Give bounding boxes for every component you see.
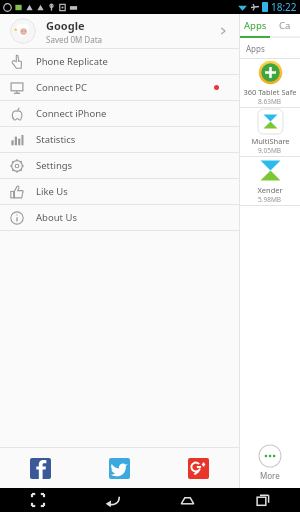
button[interactable]: About Us xyxy=(0,205,239,230)
staticText: 8.63MB xyxy=(258,97,282,106)
button[interactable]: Back xyxy=(75,488,150,512)
staticText: Statistics xyxy=(36,133,76,146)
staticText: Xender xyxy=(257,185,283,195)
button[interactable]: Social link xyxy=(109,458,130,479)
staticText: More xyxy=(260,470,280,481)
button[interactable]: Phone Replicate xyxy=(0,49,239,74)
staticText: Settings xyxy=(36,159,73,172)
button[interactable]: Home xyxy=(150,488,225,512)
staticText: Apps xyxy=(244,19,267,32)
staticText: 360 Tablet Safe xyxy=(243,87,297,97)
staticText: About Us xyxy=(36,211,77,224)
button[interactable]: Recents xyxy=(225,488,300,512)
button[interactable]: Google xyxy=(0,14,239,48)
button[interactable]: Like Us xyxy=(0,179,239,204)
button[interactable]: Apps xyxy=(240,14,270,36)
staticText: Like Us xyxy=(36,185,68,198)
staticText: 18:22 xyxy=(271,0,297,14)
button[interactable]: Statistics xyxy=(0,127,239,152)
staticText: Saved 0M Data xyxy=(46,34,103,45)
button[interactable]: Xender xyxy=(240,157,300,205)
button[interactable]: Social link xyxy=(188,458,209,479)
staticText: Phone Replicate xyxy=(36,55,108,68)
button[interactable]: Connect PC xyxy=(0,75,239,100)
button[interactable]: 360 Tablet Safe xyxy=(240,59,300,107)
button[interactable]: Settings xyxy=(0,153,239,178)
staticText: Ca xyxy=(279,19,291,32)
staticText: MultiShare xyxy=(251,136,290,146)
staticText: Connect PC xyxy=(36,81,88,94)
button[interactable]: Screenshot xyxy=(0,488,75,512)
button[interactable]: MultiShare xyxy=(240,108,300,156)
staticText: Apps xyxy=(246,43,265,54)
button[interactable]: Social link xyxy=(30,458,51,479)
staticText: 9.05MB xyxy=(258,146,282,155)
button[interactable]: Connect iPhone xyxy=(0,101,239,126)
staticText: Connect iPhone xyxy=(36,107,107,120)
button[interactable]: More xyxy=(240,440,300,484)
staticText: 5.98MB xyxy=(258,195,282,204)
staticText: Google xyxy=(46,18,85,33)
button[interactable]: Ca xyxy=(270,14,300,36)
